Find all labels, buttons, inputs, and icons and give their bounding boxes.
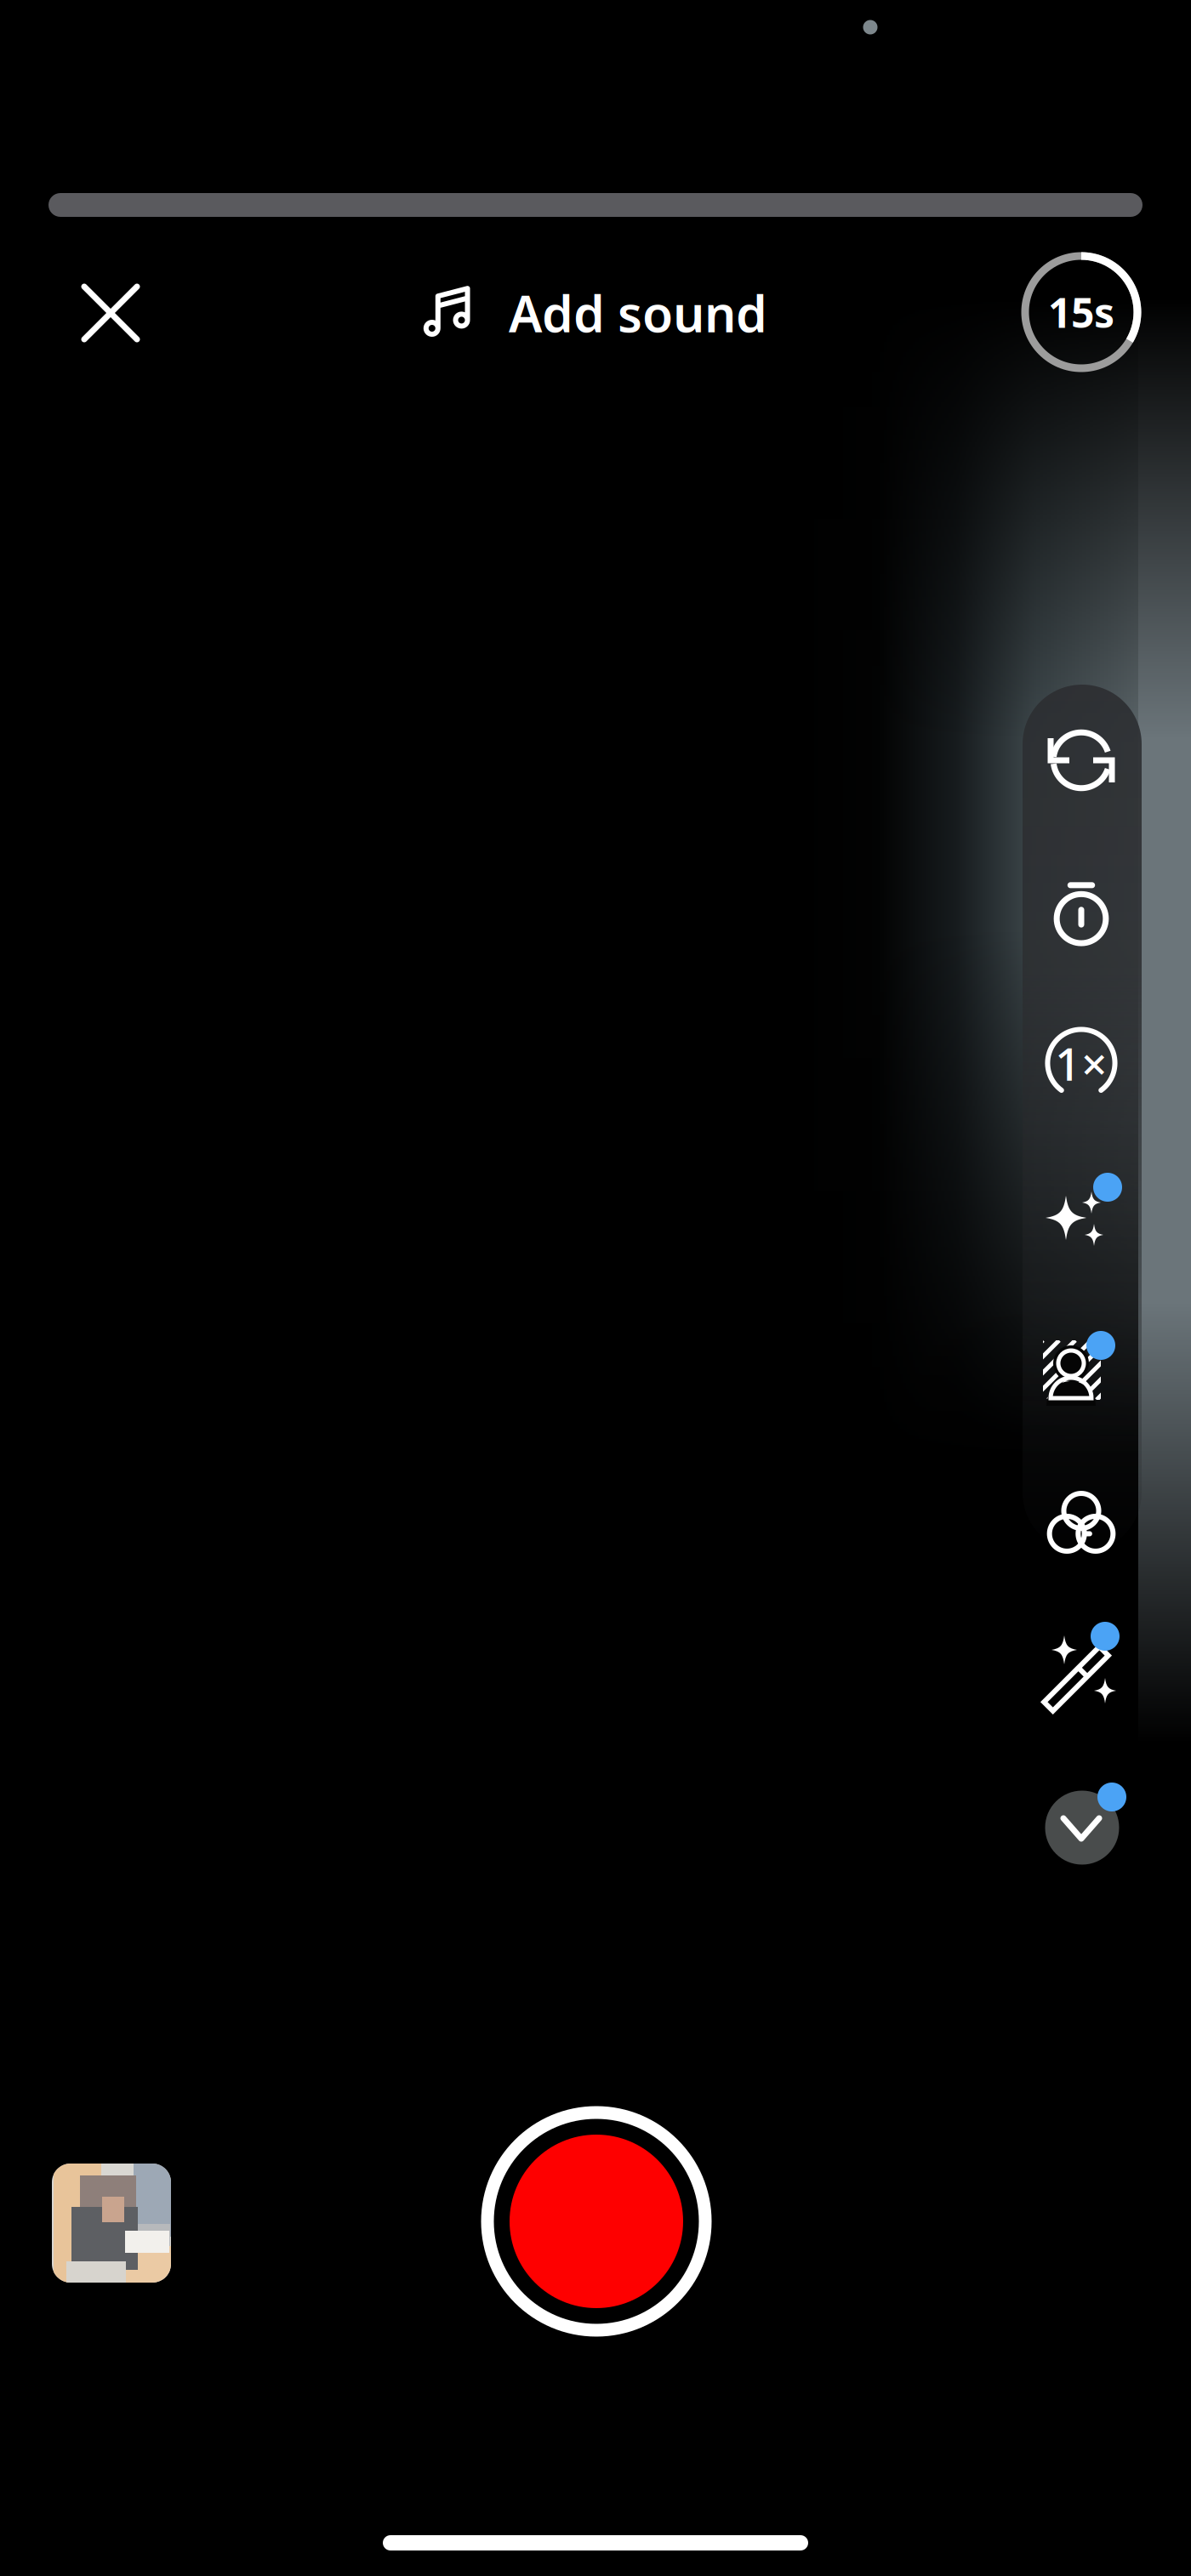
button[interactable]: Gallery: [52, 2164, 171, 2283]
button[interactable]: Speed: [1028, 1009, 1135, 1117]
button[interactable]: Portrait mode: [1034, 1322, 1130, 1418]
staticText: Add sound: [509, 280, 767, 346]
staticText: 15s: [1048, 285, 1114, 339]
button[interactable]: Record: [473, 2098, 720, 2345]
button[interactable]: Timer: [1033, 860, 1130, 964]
button[interactable]: Collapse tools: [1033, 1778, 1131, 1877]
button[interactable]: 15s: [1017, 247, 1146, 377]
button[interactable]: Flip camera: [1031, 710, 1131, 810]
staticText: 1×: [1055, 1033, 1108, 1093]
button[interactable]: Filters: [1030, 1472, 1132, 1572]
button[interactable]: Enhance: [1023, 1169, 1127, 1266]
button[interactable]: Add sound: [407, 266, 784, 360]
button[interactable]: Beautify: [1034, 1624, 1129, 1720]
button[interactable]: Close: [60, 262, 162, 364]
